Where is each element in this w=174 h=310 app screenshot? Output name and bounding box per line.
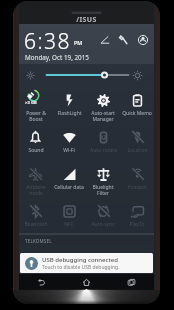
- staticText: Bluetooth: [24, 221, 48, 228]
- button[interactable]: Brightness mode: [98, 33, 111, 46]
- button[interactable]: Bluelight Filter: [86, 163, 120, 200]
- button[interactable]: Home: [64, 274, 109, 290]
- button[interactable]: Quick Memo: [120, 89, 154, 126]
- staticText: TELKOMSEL: [25, 238, 52, 244]
- staticText: Cellular data: [54, 184, 84, 191]
- staticText: Quick Memo: [122, 110, 152, 117]
- staticText: Auto-rotate: [90, 147, 117, 154]
- button[interactable]: Wi-Fi: [52, 126, 86, 163]
- staticText: Monday, Oct 19, 2015: [25, 53, 89, 62]
- button[interactable]: Recent apps: [109, 274, 154, 290]
- button[interactable]: NFC: [52, 200, 86, 237]
- button[interactable]: USB debugging connected: [20, 253, 153, 273]
- button[interactable]: Auto-sync: [86, 200, 120, 237]
- button[interactable]: User profile: [136, 33, 149, 46]
- staticText: Bluelight Filter: [92, 184, 114, 197]
- button[interactable]: Location: [120, 126, 154, 163]
- staticText: NFC: [64, 221, 74, 228]
- staticText: USB debugging connected: [42, 256, 118, 264]
- staticText: Auto-start Manager: [91, 110, 115, 123]
- staticText: Touch to disable USB debugging.: [42, 264, 120, 271]
- staticText: Auto-sync: [91, 221, 115, 228]
- button[interactable]: Brightness slider: [45, 69, 130, 81]
- staticText: Location: [127, 147, 148, 154]
- staticText: Sound: [28, 147, 44, 154]
- button[interactable]: Auto-start Manager: [86, 89, 120, 126]
- button[interactable]: Sound: [19, 126, 52, 163]
- staticText: FlashLight: [57, 110, 82, 117]
- staticText: >3 GB: [25, 100, 37, 105]
- button[interactable]: Settings: [117, 33, 130, 46]
- staticText: Wi-Fi: [63, 147, 75, 154]
- staticText: Airplane mode: [26, 184, 46, 197]
- staticText: PlayTo: [129, 221, 145, 228]
- staticText: Hotspot: [128, 184, 147, 191]
- button[interactable]: PlayTo: [120, 200, 154, 237]
- button[interactable]: >3 GB: [19, 89, 52, 126]
- button[interactable]: Airplane mode: [19, 163, 52, 200]
- button[interactable]: FlashLight: [52, 89, 86, 126]
- button[interactable]: Bluetooth: [19, 200, 52, 237]
- button[interactable]: Back: [19, 274, 64, 290]
- button[interactable]: Auto-rotate: [86, 126, 120, 163]
- staticText: /ISUS: [13, 15, 160, 25]
- button[interactable]: Cellular data: [52, 163, 86, 200]
- button[interactable]: Hotspot: [120, 163, 154, 200]
- staticText: Power & Boost: [26, 110, 46, 123]
- staticText: PM: [74, 39, 83, 46]
- staticText: 6:38: [24, 27, 72, 56]
